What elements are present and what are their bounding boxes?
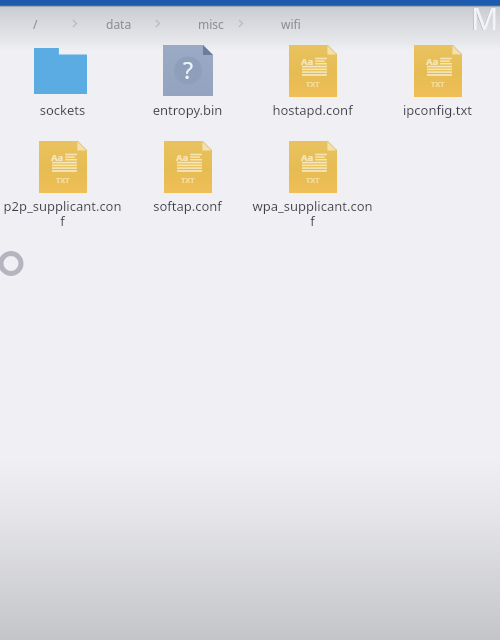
staticText: M: [470, 0, 499, 39]
staticText: entropy.bin: [125, 101, 250, 119]
staticText: wifi: [281, 16, 301, 32]
button[interactable]: /: [25, 11, 46, 37]
staticText: ?: [183, 54, 193, 85]
staticText: TXT: [181, 175, 195, 185]
button[interactable]: Aa: [0, 140, 125, 230]
button[interactable]: misc: [190, 11, 232, 37]
staticText: Aa: [301, 151, 314, 164]
button[interactable]: ?: [125, 44, 250, 119]
button[interactable]: Aa: [125, 140, 250, 215]
staticText: Aa: [176, 151, 189, 164]
button[interactable]: Aa: [250, 44, 375, 119]
staticText: softap.conf: [125, 197, 250, 215]
button[interactable]: wifi: [273, 11, 309, 37]
staticText: Aa: [51, 151, 64, 164]
staticText: Aa: [426, 55, 439, 68]
staticText: wpa_supplicant.con f: [250, 197, 375, 230]
staticText: TXT: [56, 175, 70, 185]
button[interactable]: Aa: [375, 44, 500, 119]
staticText: M: [471, 0, 499, 39]
button[interactable]: sockets: [0, 44, 125, 119]
staticText: hostapd.conf: [250, 101, 375, 119]
button[interactable]: Path separator: [63, 12, 85, 34]
button[interactable]: Path separator: [229, 12, 251, 34]
staticText: p2p_supplicant.con f: [0, 197, 125, 230]
button[interactable]: Loading: [0, 248, 26, 278]
staticText: misc: [198, 16, 224, 32]
staticText: sockets: [0, 101, 125, 119]
staticText: /: [33, 16, 38, 32]
staticText: Aa: [301, 55, 314, 68]
button[interactable]: Path separator: [146, 12, 168, 34]
staticText: TXT: [306, 79, 320, 89]
staticText: data: [106, 16, 132, 32]
staticText: TXT: [306, 175, 320, 185]
staticText: ipconfig.txt: [375, 101, 500, 119]
button[interactable]: Aa: [250, 140, 375, 230]
button[interactable]: data: [98, 11, 140, 37]
staticText: TXT: [431, 79, 445, 89]
